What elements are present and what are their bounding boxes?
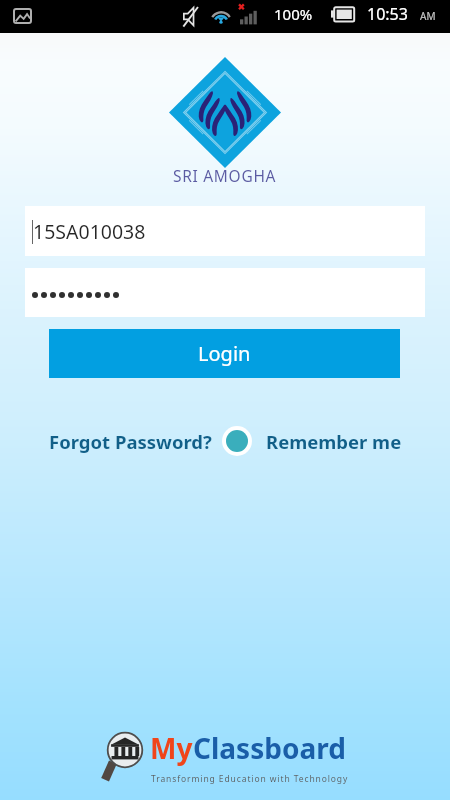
staticText: Forgot Password? (49, 429, 212, 454)
button[interactable]: Login (49, 329, 400, 378)
staticText: SRI AMOGHA (173, 165, 277, 186)
staticText: Remember me (266, 429, 402, 454)
staticText: 15SA010038 (33, 218, 146, 245)
staticText: Transforming Education with Technology (151, 773, 349, 785)
staticText: 100% (274, 4, 313, 24)
button[interactable]: Remember me (222, 426, 252, 456)
staticText: 10:53 (367, 3, 408, 25)
button[interactable] (25, 268, 425, 317)
button[interactable]: 15SA010038 (25, 206, 425, 256)
staticText: Login (198, 340, 251, 367)
staticText: AM (420, 9, 436, 23)
button[interactable]: Forgot Password? (49, 429, 212, 454)
button[interactable]: Remember me (266, 429, 402, 454)
staticText: My (150, 729, 193, 767)
staticText: Classboard (193, 729, 346, 767)
